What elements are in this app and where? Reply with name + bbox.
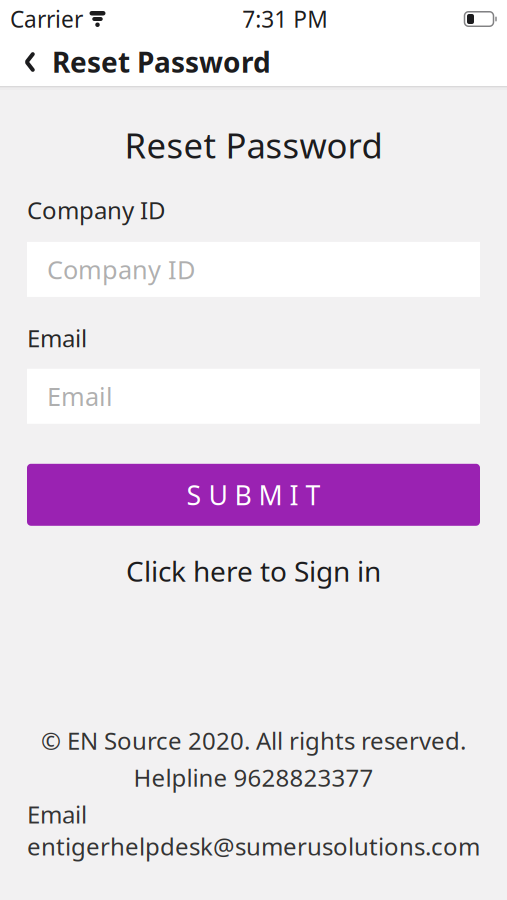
staticText: Helpline 9628823377: [133, 761, 373, 793]
staticText: Company ID: [27, 194, 166, 226]
button[interactable]: Company ID: [27, 242, 480, 297]
staticText: 7:31 PM: [242, 4, 328, 34]
staticText: Email: [47, 379, 113, 413]
staticText: © EN Source 2020. All rights reserved.: [41, 724, 466, 756]
staticText: Click here to Sign in: [126, 552, 381, 589]
staticText: Reset Password: [52, 43, 271, 81]
staticText: S U B M I T: [186, 477, 320, 512]
button[interactable]: Email: [27, 369, 480, 424]
button[interactable]: Back: [8, 38, 52, 86]
staticText: Reset Password: [124, 122, 382, 168]
button[interactable]: Click here to Sign in: [27, 549, 480, 593]
button[interactable]: S U B M I T: [27, 464, 480, 526]
staticText: Company ID: [47, 253, 195, 286]
staticText: Email: [27, 322, 87, 354]
staticText: Email entigerhelpdesk@sumerusolutions.co…: [27, 798, 480, 862]
staticText: Carrier: [10, 4, 83, 34]
